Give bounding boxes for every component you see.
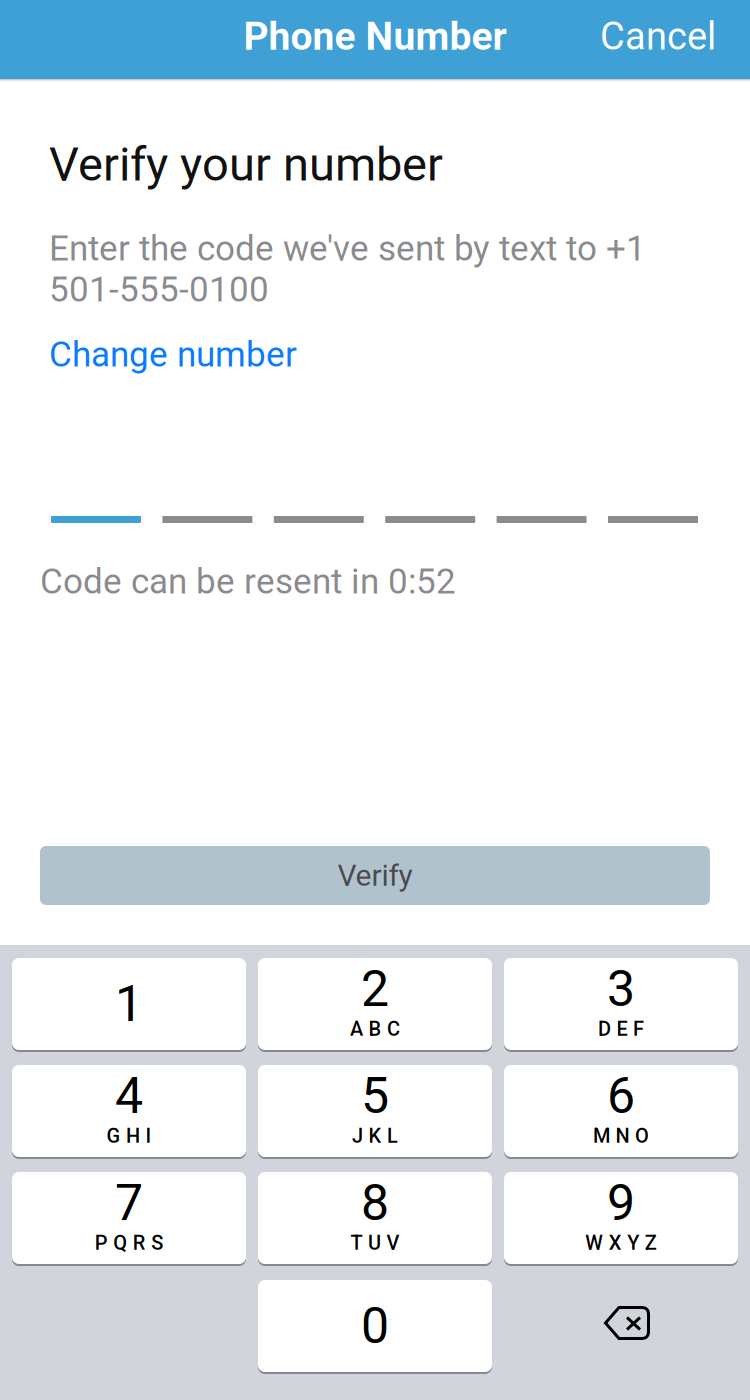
button[interactable]: Cancel [556, 0, 750, 73]
staticText: 3 [607, 960, 635, 1018]
staticText: Phone Number [243, 14, 506, 59]
staticText: Change number [49, 334, 297, 375]
staticText: Cancel [600, 14, 716, 59]
staticText: MNO [593, 1124, 649, 1148]
staticText: PQRS [95, 1231, 163, 1255]
button[interactable]: Delete [510, 1277, 744, 1369]
staticText: 6 [607, 1067, 635, 1125]
button[interactable]: Change number [49, 334, 297, 375]
button[interactable]: 7 [12, 1172, 246, 1264]
staticText: WXYZ [585, 1231, 657, 1255]
staticText: DEF [598, 1017, 644, 1041]
button[interactable]: Verify [40, 846, 710, 905]
button[interactable]: 3 [504, 958, 738, 1050]
staticText: 1 [115, 975, 143, 1033]
button[interactable]: 5 [258, 1065, 492, 1157]
button[interactable]: 6 [504, 1065, 738, 1157]
staticText: Enter the code we've sent by text to +1 … [49, 228, 646, 310]
staticText: 9 [607, 1174, 635, 1232]
staticText: 7 [115, 1174, 143, 1232]
staticText: 8 [361, 1174, 389, 1232]
staticText: 0 [361, 1297, 389, 1355]
staticText: 2 [361, 960, 389, 1018]
staticText: TUV [350, 1231, 399, 1255]
staticText: GHI [106, 1124, 151, 1148]
staticText: Verify your number [49, 137, 443, 192]
staticText: JKL [352, 1124, 398, 1148]
staticText: Code can be resent in 0:52 [40, 561, 456, 602]
button[interactable]: 1 [12, 958, 246, 1050]
button[interactable]: 4 [12, 1065, 246, 1157]
staticText: ABC [350, 1017, 400, 1041]
staticText: 5 [361, 1067, 389, 1125]
button[interactable]: 0 [258, 1280, 492, 1372]
button[interactable]: 9 [504, 1172, 738, 1264]
button[interactable]: 8 [258, 1172, 492, 1264]
staticText: Verify [337, 858, 412, 893]
button[interactable]: 2 [258, 958, 492, 1050]
staticText: 4 [115, 1067, 143, 1125]
